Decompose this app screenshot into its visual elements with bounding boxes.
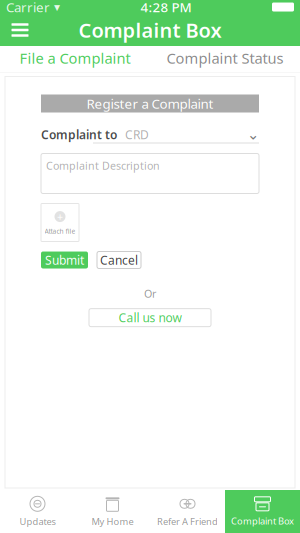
staticText: Call us now [118, 310, 181, 326]
staticText: File a Complaint [19, 48, 130, 68]
staticText: 4:28 PM [140, 0, 191, 16]
staticText: + [57, 209, 63, 224]
staticText: Complaint to [41, 126, 117, 142]
staticText: ⌄ [247, 126, 259, 143]
staticText: My Home [91, 515, 133, 528]
staticText: Submit [45, 252, 84, 268]
staticText: CRD [125, 126, 149, 142]
staticText: Register a Complaint [86, 95, 213, 112]
button[interactable]: Updates [0, 490, 75, 533]
staticText: Cancel [100, 252, 138, 268]
button[interactable]: Cancel [97, 251, 141, 268]
staticText: Complaint Description [46, 158, 160, 173]
button[interactable]: My Home [75, 490, 150, 533]
button[interactable]: Submit [41, 251, 88, 268]
staticText: Complaint Box [78, 17, 221, 43]
button[interactable]: Complaint Box [225, 490, 300, 533]
button[interactable]: Call us now [89, 309, 211, 327]
staticText: Complaint Status [166, 48, 283, 68]
staticText: Refer A Friend [157, 515, 218, 528]
button[interactable]: Menu [0, 14, 40, 46]
button[interactable]: + [41, 203, 79, 241]
staticText: Updates [19, 515, 55, 528]
staticText: Complaint Box [231, 515, 294, 527]
staticText: ▾ [54, 0, 60, 14]
button[interactable]: Refer A Friend [150, 490, 225, 533]
button[interactable]: File a Complaint [0, 46, 150, 72]
staticText: Attach file [44, 227, 75, 236]
staticText: Or [144, 286, 156, 301]
staticText: Carrier [6, 0, 50, 16]
button[interactable]: Complaint Status [150, 46, 300, 72]
